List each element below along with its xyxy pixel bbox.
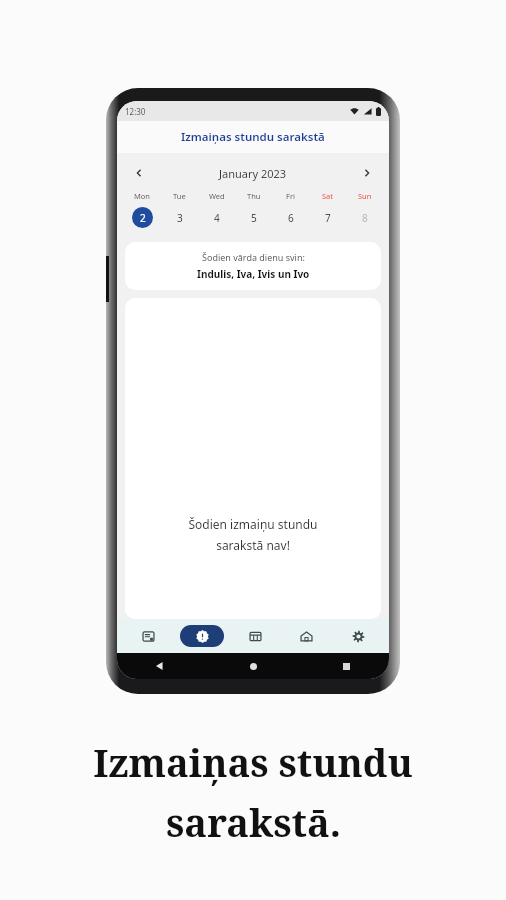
button[interactable]: 4 — [206, 207, 227, 228]
button[interactable]: 7 — [317, 207, 338, 228]
staticText: Thu — [247, 191, 261, 201]
button[interactable]: Recent apps — [337, 657, 355, 675]
staticText: Mon — [134, 191, 150, 201]
staticText: sarakstā nav! — [216, 537, 290, 553]
staticText: Indulis, Iva, Ivis un Ivo — [197, 267, 310, 281]
button[interactable]: Previous month — [129, 163, 149, 183]
staticText: 5 — [251, 211, 257, 225]
button[interactable]: 2 — [132, 207, 153, 228]
button[interactable]: Changes — [180, 625, 224, 647]
button[interactable]: Home — [286, 622, 326, 650]
staticText: 7 — [325, 211, 331, 225]
button[interactable]: 6 — [280, 207, 301, 228]
button[interactable]: Next month — [357, 163, 377, 183]
staticText: Fri — [286, 191, 295, 201]
staticText: Sun — [358, 191, 372, 201]
staticText: sarakstā. — [166, 796, 341, 848]
button[interactable]: 3 — [169, 207, 190, 228]
button[interactable]: Šodien vārda dienu svin: — [125, 242, 381, 290]
staticText: Izmaiņas stundu sarakstā — [181, 129, 325, 145]
staticText: 4 — [214, 211, 220, 225]
button[interactable]: 5 — [243, 207, 264, 228]
button[interactable]: Settings — [338, 622, 378, 650]
button[interactable]: Classroom — [235, 622, 275, 650]
staticText: Izmaiņas stundu — [93, 736, 413, 788]
staticText: Šodien vārda dienu svin: — [202, 251, 305, 263]
staticText: 3 — [177, 211, 183, 225]
staticText: 2 — [140, 211, 146, 225]
staticText: Sat — [322, 191, 334, 201]
staticText: 12:30 — [125, 106, 146, 117]
staticText: 6 — [288, 211, 294, 225]
button[interactable]: Home — [244, 657, 262, 675]
staticText: January 2023 — [219, 166, 287, 181]
staticText: Tue — [173, 191, 186, 201]
staticText: 8 — [362, 211, 368, 225]
button[interactable]: Schedule — [128, 622, 168, 650]
staticText: Šodien izmaiņu stundu — [188, 516, 318, 532]
button[interactable]: Back — [151, 657, 169, 675]
staticText: Wed — [209, 191, 225, 201]
button[interactable]: 8 — [354, 207, 375, 228]
